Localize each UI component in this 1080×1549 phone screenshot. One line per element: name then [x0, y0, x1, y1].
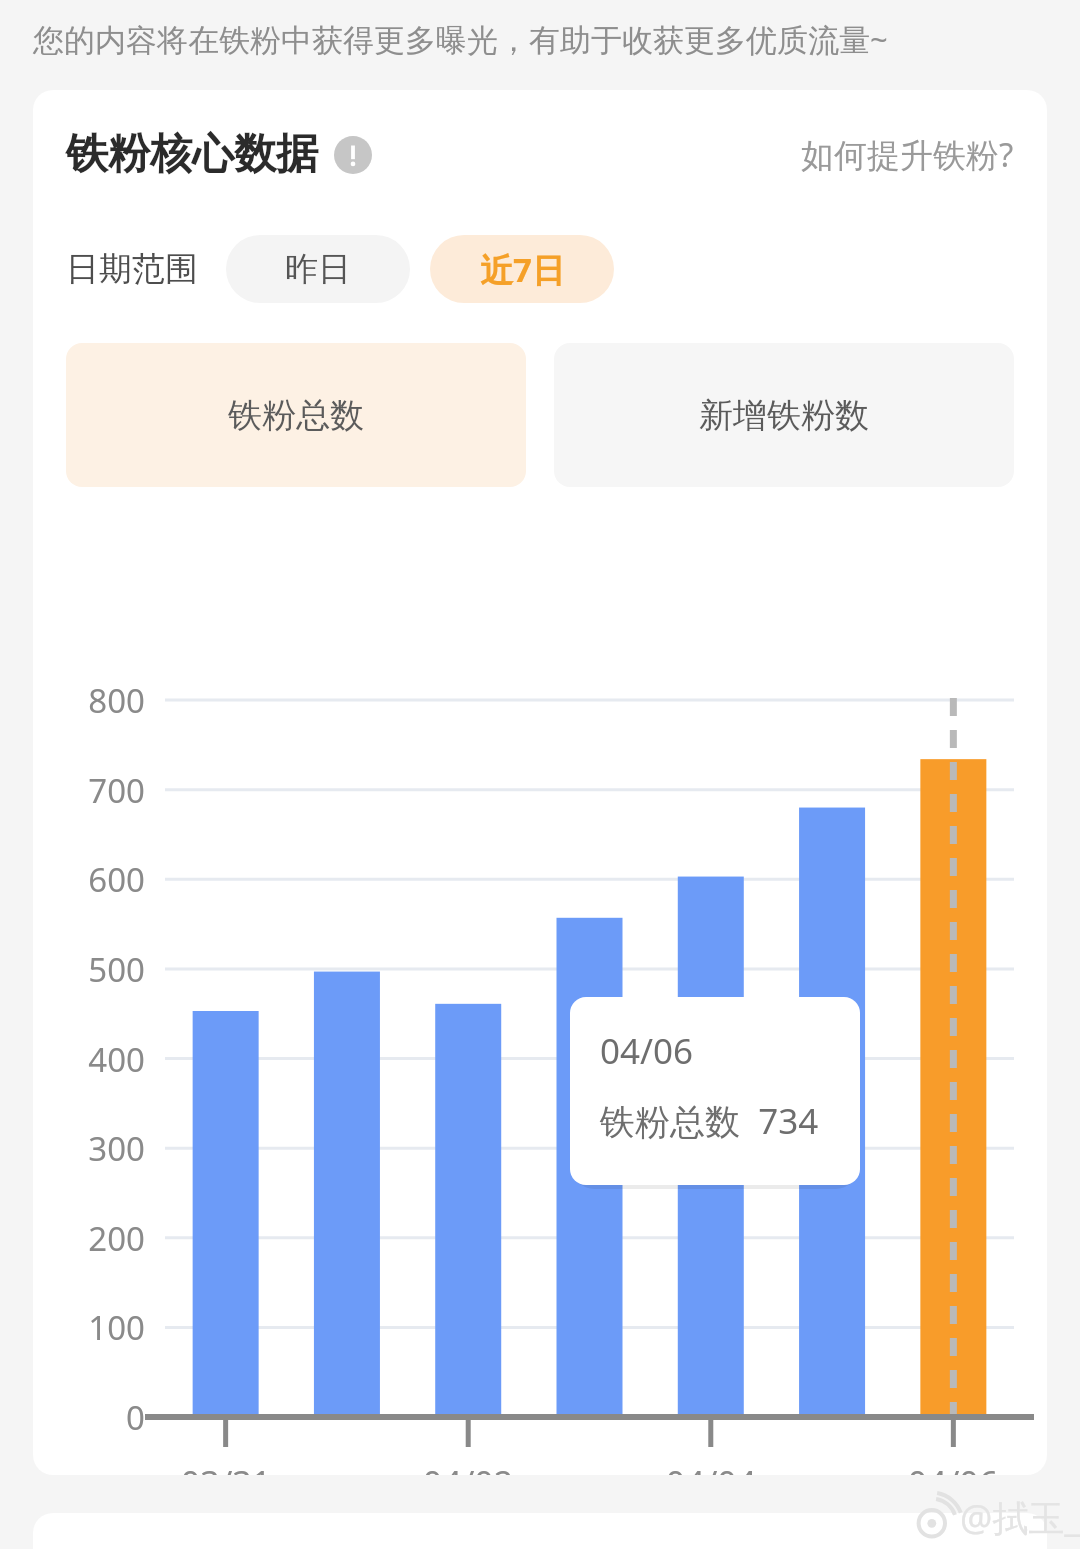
staticText: 100: [33, 1305, 145, 1350]
staticText: 日期范围: [66, 248, 198, 290]
staticText: 800: [33, 678, 145, 723]
staticText: 如何提升铁粉?: [801, 132, 1014, 177]
staticText: 300: [33, 1126, 145, 1171]
button[interactable]: 新增铁粉数: [554, 343, 1014, 487]
staticText: @拭玉_: [960, 1493, 1080, 1542]
staticText: 700: [33, 768, 145, 813]
staticText: 200: [33, 1216, 145, 1261]
staticText: 近7日: [480, 247, 565, 292]
staticText: 400: [33, 1037, 145, 1082]
staticText: 铁粉核心数据: [66, 128, 318, 181]
staticText: 04/02: [378, 1460, 558, 1475]
staticText: 03/31: [136, 1460, 316, 1475]
staticText: 昨日: [285, 248, 351, 290]
button[interactable]: 说明: [334, 136, 372, 174]
staticText: 04/06: [600, 1027, 694, 1075]
staticText: 04/06: [863, 1460, 1043, 1475]
staticText: 铁粉总数: [228, 394, 364, 437]
button[interactable]: 如何提升铁粉?: [801, 132, 1014, 177]
staticText: 600: [33, 857, 145, 902]
staticText: 新增铁粉数: [699, 394, 869, 437]
staticText: 铁粉总数 734: [600, 1097, 819, 1145]
staticText: 您的内容将在铁粉中获得更多曝光，有助于收获更多优质流量~: [33, 18, 888, 60]
staticText: 0: [33, 1395, 145, 1440]
button[interactable]: 近7日: [430, 235, 614, 303]
button[interactable]: 昨日: [226, 235, 410, 303]
staticText: 04/04: [621, 1460, 801, 1475]
staticText: 500: [33, 947, 145, 992]
button[interactable]: 铁粉总数: [66, 343, 526, 487]
